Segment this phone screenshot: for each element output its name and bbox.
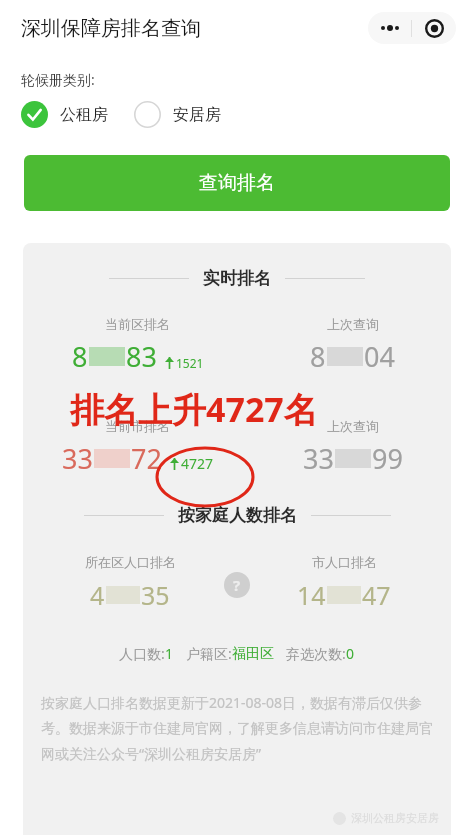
staticText: 8 — [310, 338, 326, 375]
staticText: 72 — [131, 440, 162, 477]
staticText: 35 — [141, 578, 170, 612]
staticText: 1 — [165, 644, 174, 663]
button[interactable]: More and Close — [368, 12, 456, 44]
staticText: 1521 — [176, 355, 204, 371]
staticText: 查询排名 — [199, 171, 275, 195]
staticText: 轮候册类别: — [21, 70, 95, 89]
staticText: 深圳保障房排名查询 — [21, 16, 201, 41]
staticText: 按家庭人口排名数据更新于2021-08-08日，数据有滞后仅供参考。数据来源于市… — [41, 693, 433, 763]
staticText: 4727 — [181, 454, 214, 473]
staticText: 上次查询 — [327, 316, 379, 332]
staticText: 14 — [297, 578, 326, 612]
staticText: 04 — [364, 338, 395, 375]
staticText: 排名上升4727名 — [70, 386, 318, 432]
button[interactable]: 查询排名 — [24, 155, 450, 211]
staticText: 弃选次数: — [286, 644, 346, 663]
staticText: 47 — [362, 578, 391, 612]
staticText: 人口数: — [119, 644, 165, 663]
staticText: 33 — [303, 440, 334, 477]
staticText: 4 — [90, 578, 105, 612]
staticText: 当前区排名 — [105, 316, 170, 332]
staticText: 0 — [346, 644, 355, 663]
staticText: 按家庭人数排名 — [178, 505, 297, 526]
staticText: 所在区人口排名 — [85, 554, 176, 570]
staticText: 33 — [62, 440, 93, 477]
staticText: 安居房 — [173, 105, 221, 125]
staticText: 市人口排名 — [312, 554, 377, 570]
button[interactable]: 安居房 — [134, 101, 221, 128]
staticText: 83 — [126, 338, 157, 375]
staticText: 上次查询 — [327, 418, 379, 434]
button[interactable]: 公租房 — [21, 101, 108, 128]
staticText: 公租房 — [60, 105, 108, 125]
staticText: ? — [233, 575, 241, 595]
staticText: 户籍区: — [186, 644, 232, 663]
staticText: 深圳公租房安居房 — [351, 811, 439, 825]
staticText: 福田区 — [232, 645, 274, 663]
staticText: 8 — [72, 338, 88, 375]
button[interactable]: Help — [224, 572, 250, 598]
staticText: 99 — [372, 440, 403, 477]
staticText: 当前市排名 — [105, 418, 170, 434]
staticText: 实时排名 — [203, 268, 271, 289]
